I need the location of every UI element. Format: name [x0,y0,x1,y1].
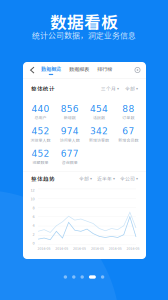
staticText: 收藏数量 [33,159,49,165]
button[interactable]: 全部 [79,175,92,182]
staticText: 排行榜 [97,65,112,73]
button[interactable]: 数据报表 [69,65,89,75]
button[interactable]: 452 [26,148,55,165]
staticText: 4 [32,224,34,228]
staticText: 整体趋势 [31,175,55,183]
staticText: 2016-05 [55,247,68,250]
staticText: 2016-05 [127,247,140,250]
button[interactable]: 全部 [125,85,138,92]
staticText: 67 [122,126,134,137]
staticText: 452 [32,126,50,137]
button[interactable]: 452 [26,126,55,143]
button[interactable]: 88 [114,104,143,120]
staticText: 访问量人数 [60,137,80,143]
staticText: 8 [32,206,34,210]
staticText: 2016-05 [37,247,50,250]
button[interactable]: 排行榜 [97,65,112,75]
staticText: 整体统计 [31,84,55,93]
button[interactable]: 数据概览 [41,65,61,75]
staticText: ▾ [136,176,138,181]
staticText: 454 [90,104,108,114]
staticText: 近半年 [97,175,112,182]
staticText: 440 [32,104,50,114]
staticText: 677 [61,148,79,159]
staticText: 10 [30,197,34,201]
button[interactable]: 440 [26,104,55,120]
staticText: 订单数 [122,115,134,120]
button[interactable]: 三个月 [101,85,119,92]
button[interactable]: 全公司 [120,175,138,182]
staticText: 全部 [125,85,135,92]
button[interactable]: 454 [84,104,114,120]
staticText: 全部 [79,175,89,182]
staticText: 2016-05 [91,247,104,250]
staticText: ▾ [113,176,115,181]
staticText: ▾ [90,176,92,181]
staticText: 新增访客数 [89,137,109,143]
staticText: 0 [32,241,34,245]
button[interactable]: 974 [55,126,84,143]
button[interactable]: Settings [134,66,141,73]
staticText: 6 [32,215,34,219]
staticText: 三个月 [101,85,116,92]
staticText: 新增数 [64,115,76,120]
staticText: 总用户 [35,115,47,120]
button[interactable]: 67 [114,126,143,143]
staticText: 咨询数量 [62,159,78,165]
button[interactable]: 342 [84,126,114,143]
staticText: 新增会员数 [118,137,138,143]
staticText: 数据看板 [50,9,118,33]
staticText: ▾ [136,86,138,91]
button[interactable]: 677 [55,148,84,165]
button[interactable]: Back [28,64,37,76]
staticText: 2016-05 [73,247,86,250]
staticText: 856 [61,104,79,114]
staticText: 数据报表 [69,65,89,73]
staticText: 974 [61,126,79,137]
staticText: 统计公司数据，洞定业务信息 [32,29,136,41]
staticText: 2 [32,232,34,236]
staticText: 2016-05 [109,247,122,250]
staticText: 452 [32,148,50,159]
staticText: 浏览量人数 [31,137,51,143]
staticText: ▾ [117,86,119,91]
button[interactable]: 近半年 [97,175,115,182]
staticText: 88 [122,104,134,114]
staticText: 342 [90,126,108,137]
staticText: 活跃数 [93,115,105,120]
button[interactable]: 856 [55,104,84,120]
staticText: 全公司 [120,175,135,182]
staticText: 数据概览 [41,65,61,73]
staticText: 12 [30,188,34,192]
